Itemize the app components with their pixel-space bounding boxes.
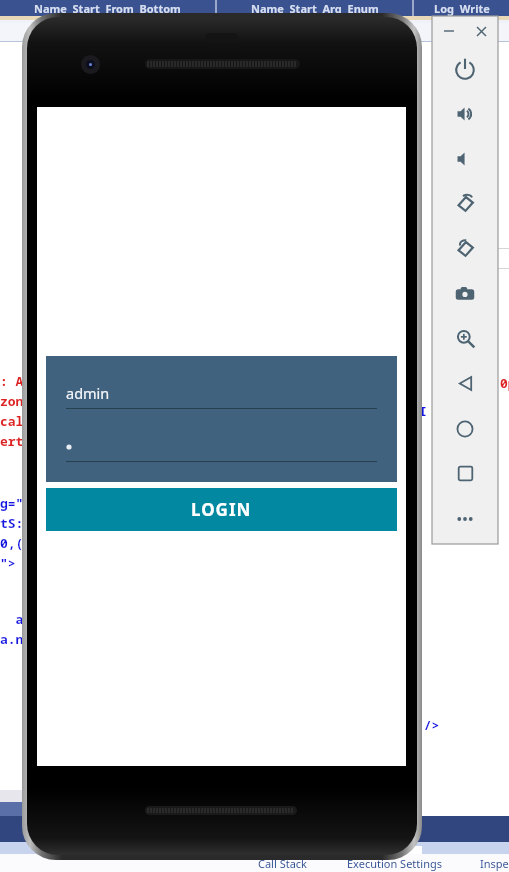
staticText: at xyxy=(0,610,32,628)
staticText: Name Start From Bottom xyxy=(34,1,181,16)
button[interactable]: LOGIN xyxy=(46,488,397,531)
staticText: I xyxy=(419,402,427,420)
staticText: LOGIN xyxy=(191,498,252,521)
staticText: : A xyxy=(0,372,24,390)
staticText: 0,( xyxy=(0,534,24,552)
staticText: Log Write xyxy=(434,1,490,16)
button[interactable]: Rotate right xyxy=(432,226,498,271)
button[interactable]: Overview xyxy=(432,451,498,496)
staticText: cal xyxy=(0,412,24,430)
button[interactable]: admin xyxy=(66,382,377,409)
button[interactable]: Home xyxy=(432,406,498,451)
button[interactable]: Volume up xyxy=(432,91,498,136)
button[interactable]: Power xyxy=(432,46,498,91)
staticText: 0p xyxy=(500,374,509,392)
button[interactable]: Take screenshot xyxy=(432,271,498,316)
staticText: g=" xyxy=(0,494,24,512)
staticText: "> xyxy=(0,554,16,572)
staticText: a.n xyxy=(0,630,24,648)
staticText: ▼ ▲ xyxy=(364,840,381,851)
button[interactable]: More xyxy=(432,496,498,541)
staticText: zon xyxy=(0,392,24,410)
staticText: Execution Settings xyxy=(347,856,442,871)
button[interactable]: Close xyxy=(465,16,498,46)
staticText: tS: xyxy=(0,514,24,532)
button[interactable]: Minimize xyxy=(432,16,465,46)
button[interactable]: Volume down xyxy=(432,136,498,181)
button[interactable] xyxy=(66,435,377,462)
button[interactable]: Rotate left xyxy=(432,181,498,226)
staticText: Inspection xyxy=(480,856,509,871)
button[interactable]: Back xyxy=(432,361,498,406)
staticText: Call Stack xyxy=(258,856,307,871)
staticText: "/> xyxy=(416,716,440,734)
staticText: : xyxy=(414,374,422,392)
staticText: Name Start Arg Enum xyxy=(251,1,379,16)
staticText: admin xyxy=(66,383,110,403)
staticText: ert xyxy=(0,432,24,450)
button[interactable]: Zoom xyxy=(432,316,498,361)
